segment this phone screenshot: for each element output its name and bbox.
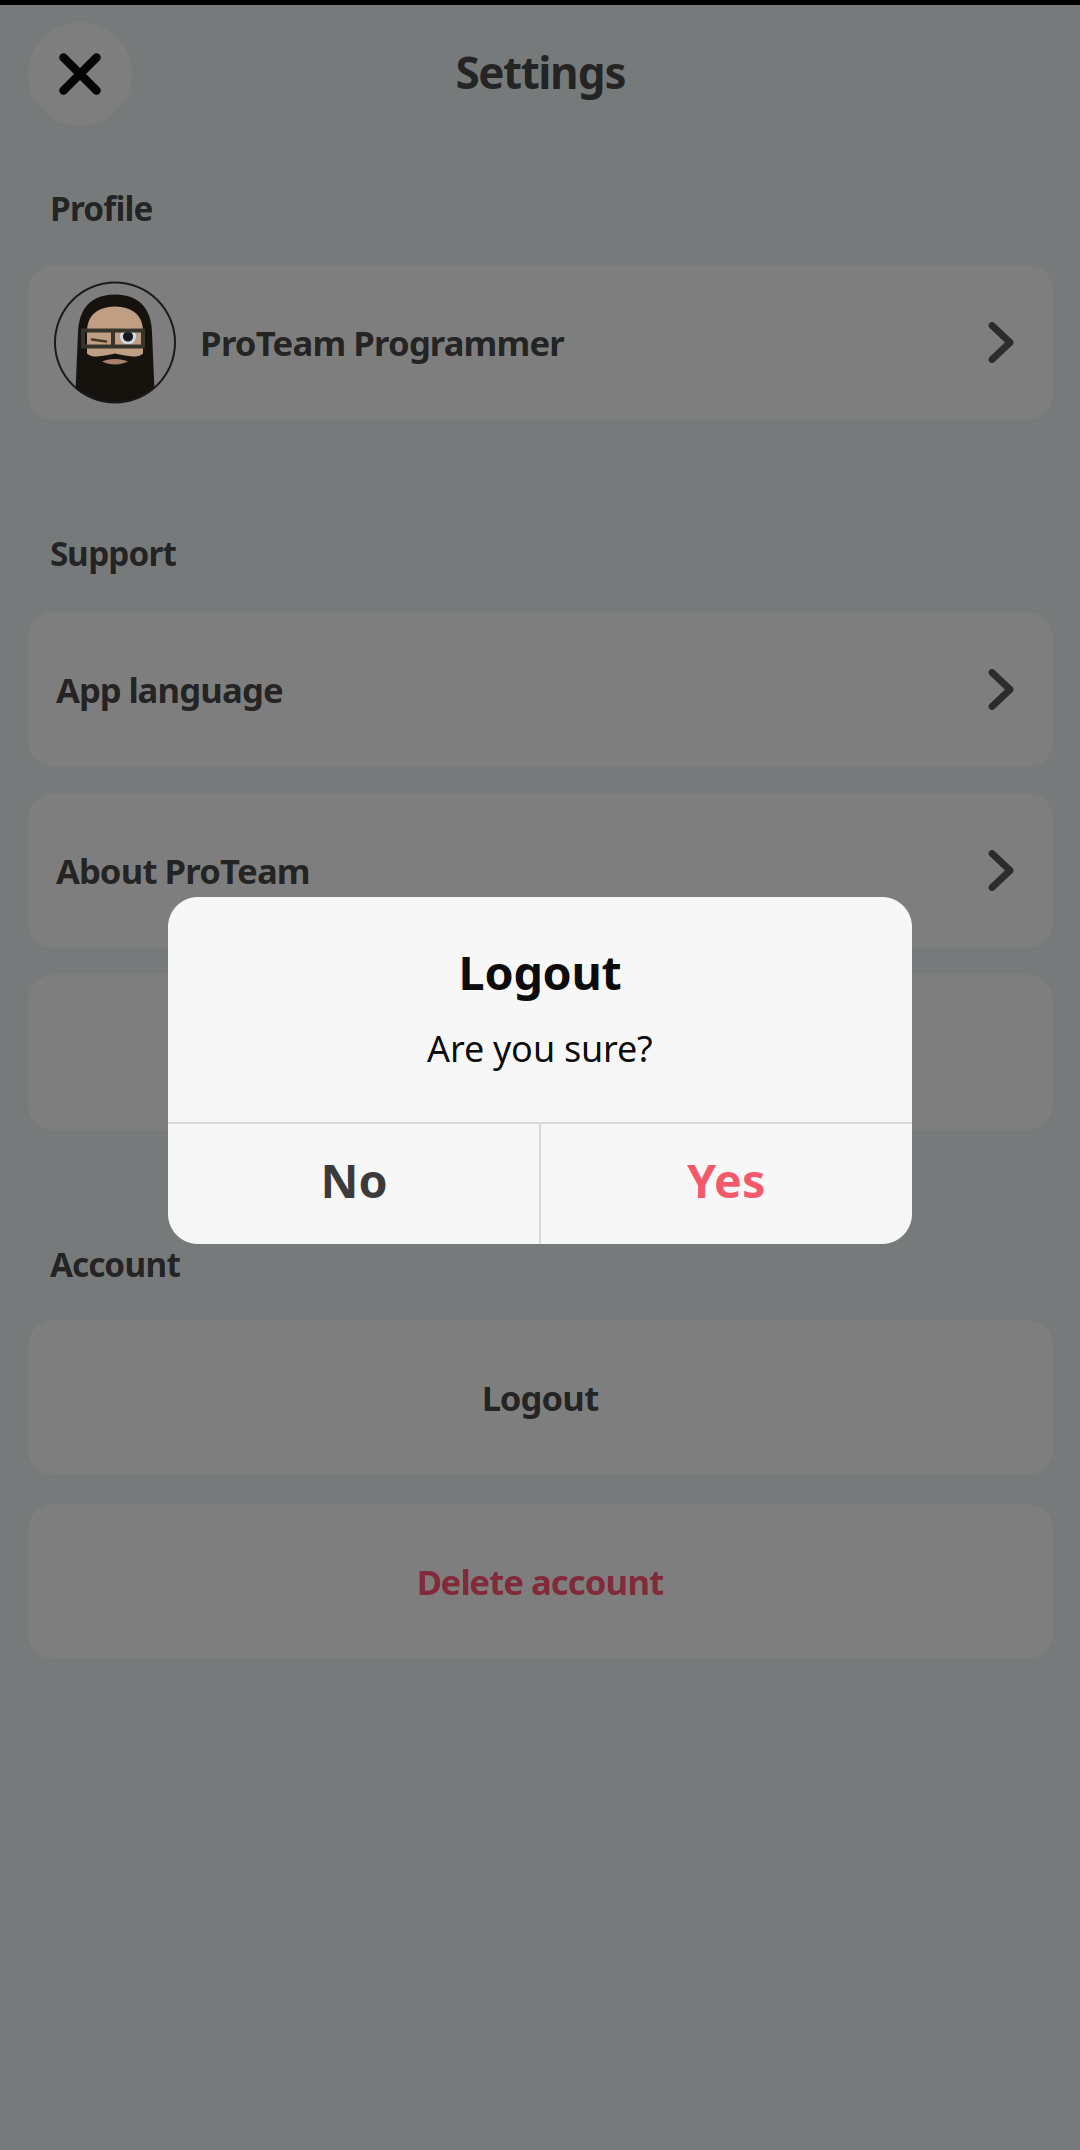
button[interactable]: Yes — [540, 1120, 911, 1240]
button[interactable]: Logout — [28, 1320, 1053, 1475]
staticText: Yes — [687, 1149, 765, 1211]
staticText: Are you sure? — [427, 1024, 653, 1072]
button[interactable]: Delete account — [28, 1504, 1053, 1659]
button[interactable]: Close — [28, 22, 132, 126]
staticText: No — [320, 1149, 387, 1211]
staticText: Settings — [455, 43, 626, 101]
button[interactable]: Rate the app — [28, 975, 1053, 1130]
staticText: App language — [56, 666, 284, 712]
button[interactable]: App language — [28, 612, 1053, 767]
button[interactable]: About ProTeam — [28, 793, 1053, 948]
staticText: Rate the app — [435, 1029, 645, 1075]
staticText: Logout — [482, 1374, 599, 1420]
staticText: ProTeam Programmer — [200, 319, 564, 365]
staticText: Account — [50, 1242, 181, 1286]
staticText: About ProTeam — [56, 847, 311, 893]
button[interactable]: No — [168, 1120, 539, 1240]
staticText: Logout — [458, 941, 621, 1003]
staticText: Support — [50, 531, 177, 575]
button[interactable]: ProTeam Programmer — [28, 265, 1053, 420]
staticText: Profile — [50, 186, 154, 230]
staticText: Delete account — [417, 1558, 664, 1604]
